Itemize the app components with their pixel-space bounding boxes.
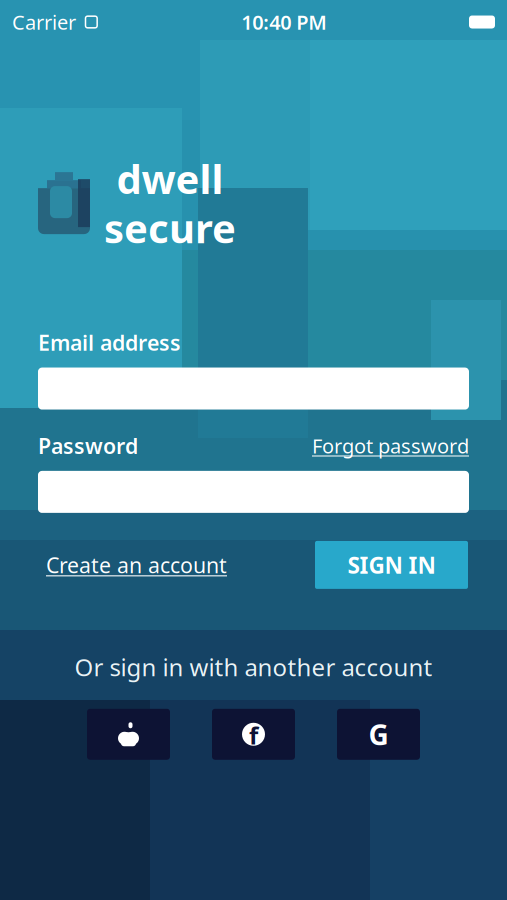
staticText: 10:40 PM xyxy=(241,9,327,35)
staticText: Forgot password xyxy=(312,432,469,459)
button[interactable]: SIGN IN xyxy=(315,541,468,589)
staticText: dwell xyxy=(116,152,223,205)
staticText: SIGN IN xyxy=(347,550,435,580)
staticText: G xyxy=(368,716,388,753)
staticText: Or sign in with another account xyxy=(74,651,432,683)
button[interactable]: Forgot password xyxy=(312,432,469,459)
staticText: secure xyxy=(104,201,236,254)
button[interactable]: Sign in with Google xyxy=(337,709,420,760)
staticText: Email address xyxy=(38,328,181,356)
staticText: Password xyxy=(38,432,138,460)
staticText: f xyxy=(249,719,258,751)
staticText: Create an account xyxy=(46,551,227,579)
button[interactable]: Sign in with Facebook xyxy=(212,709,295,760)
button[interactable]: Sign in with Apple xyxy=(87,709,170,760)
button[interactable]: Create an account xyxy=(46,543,227,587)
staticText: Carrier xyxy=(12,9,76,35)
